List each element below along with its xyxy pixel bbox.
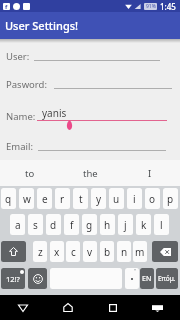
staticText: Name: — [6, 110, 36, 123]
button[interactable]: f — [64, 214, 79, 235]
staticText: r — [60, 192, 65, 206]
staticText: l — [160, 218, 163, 232]
button[interactable]: j — [118, 214, 133, 235]
button[interactable]: Emoji — [28, 268, 47, 289]
button[interactable]: " — [125, 268, 139, 289]
staticText: o — [149, 192, 156, 206]
button[interactable]: c — [66, 241, 80, 262]
button[interactable]: n — [117, 241, 131, 262]
button[interactable]: w — [19, 188, 34, 209]
button[interactable]: i — [127, 188, 142, 209]
button[interactable]: the — [60, 160, 120, 186]
button[interactable]: m — [133, 241, 147, 262]
staticText: Pasword: — [6, 78, 47, 91]
button[interactable]: e — [37, 188, 52, 209]
button[interactable]: h — [100, 214, 115, 235]
staticText: a — [15, 218, 21, 232]
staticText: q — [5, 192, 12, 206]
staticText: t — [79, 192, 83, 206]
button[interactable]: d — [46, 214, 61, 235]
staticText: i — [133, 192, 136, 206]
button[interactable]: Επόμ. — [156, 268, 178, 289]
button[interactable]: to — [0, 160, 60, 186]
button[interactable]: EN — [140, 268, 154, 289]
button[interactable]: g — [82, 214, 97, 235]
staticText: g — [86, 218, 93, 232]
button[interactable]: y — [91, 188, 106, 209]
staticText: User: — [6, 50, 30, 63]
button[interactable]: q — [1, 188, 16, 209]
staticText: x — [54, 245, 60, 259]
staticText: b — [104, 245, 111, 259]
button[interactable]: 12!? — [1, 268, 25, 289]
button[interactable]: a — [10, 214, 25, 235]
staticText: I — [148, 167, 152, 180]
staticText: Email: — [6, 140, 33, 153]
button[interactable]: b — [100, 241, 114, 262]
staticText: yanis — [42, 106, 67, 120]
staticText: w — [23, 192, 31, 206]
staticText: f — [5, 3, 8, 10]
button[interactable]: Shift — [1, 241, 26, 262]
staticText: n — [121, 245, 128, 259]
staticText: 91% — [146, 3, 156, 10]
button[interactable]: x — [50, 241, 64, 262]
other: Shift — [9, 247, 18, 256]
staticText: c — [71, 245, 76, 259]
button[interactable]: v — [83, 241, 97, 262]
staticText: " — [134, 268, 137, 275]
button[interactable]: z — [33, 241, 47, 262]
button[interactable]: u — [109, 188, 124, 209]
button[interactable]: p — [163, 188, 178, 209]
staticText: to — [25, 167, 35, 180]
button[interactable]: o — [145, 188, 160, 209]
button[interactable]: k — [136, 214, 151, 235]
staticText: e — [42, 192, 48, 206]
button[interactable]: r — [55, 188, 70, 209]
staticText: d — [50, 218, 57, 232]
staticText: h — [104, 218, 111, 232]
staticText: User Settings! — [5, 18, 79, 33]
button[interactable]: Hide keyboard — [135, 295, 180, 320]
staticText: f — [70, 218, 74, 232]
staticText: m — [135, 245, 145, 259]
staticText: y — [96, 192, 102, 206]
other: Backspace — [160, 248, 171, 256]
staticText: 12!? — [6, 274, 20, 284]
other: Emoji — [33, 274, 43, 284]
button[interactable]: I — [120, 160, 180, 186]
button[interactable]: Back — [0, 295, 45, 320]
button[interactable]: t — [73, 188, 88, 209]
staticText: z — [38, 245, 43, 259]
staticText: s — [33, 218, 38, 232]
staticText: 1:45 — [160, 1, 176, 12]
staticText: Επόμ. — [158, 274, 176, 283]
staticText: EN — [142, 274, 152, 284]
staticText: k — [141, 218, 147, 232]
button[interactable]: Recents — [90, 295, 135, 320]
button[interactable]: l — [154, 214, 169, 235]
staticText: j — [124, 218, 127, 232]
button[interactable]: Home — [45, 295, 90, 320]
staticText: the — [83, 167, 98, 180]
button[interactable]: s — [28, 214, 43, 235]
staticText: p — [167, 192, 174, 206]
staticText: v — [87, 245, 93, 259]
button[interactable]: Backspace — [152, 241, 178, 262]
staticText: u — [113, 192, 120, 206]
